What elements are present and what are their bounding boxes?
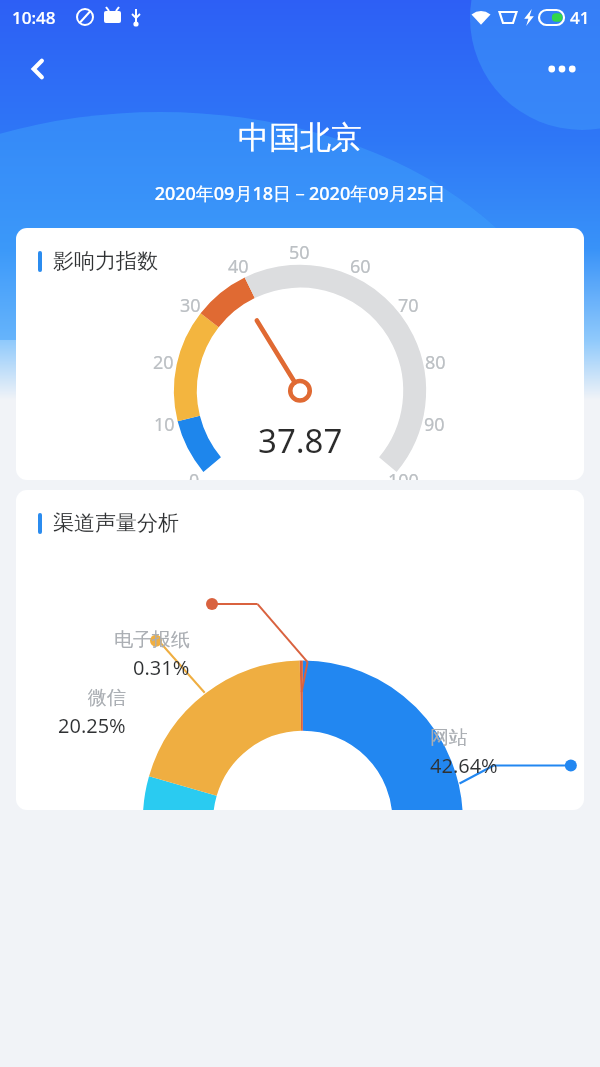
- staticText: 90: [424, 412, 445, 437]
- staticText: 0.31%: [133, 654, 190, 681]
- staticText: 41: [570, 6, 590, 29]
- staticText: 10:48: [12, 6, 56, 29]
- staticText: 100: [388, 468, 419, 480]
- staticText: 微信: [88, 686, 126, 710]
- staticText: 20.25%: [58, 712, 126, 739]
- staticText: 42.64%: [430, 752, 498, 779]
- staticText: 30: [180, 293, 201, 318]
- staticText: 0: [189, 468, 200, 480]
- button[interactable]: Back: [14, 45, 62, 93]
- staticText: 网站: [430, 726, 468, 750]
- button[interactable]: 渠道声量分析: [16, 490, 584, 810]
- staticText: 70: [398, 293, 419, 318]
- staticText: 80: [425, 350, 446, 375]
- staticText: 中国北京: [0, 118, 600, 157]
- staticText: 2020年09月18日－2020年09月25日: [0, 181, 600, 206]
- staticText: 37.87: [258, 418, 343, 463]
- staticText: 20: [153, 350, 174, 375]
- staticText: 60: [350, 254, 371, 279]
- staticText: 电子报纸: [114, 628, 190, 652]
- staticText: 渠道声量分析: [53, 510, 179, 536]
- button[interactable]: 影响力指数: [16, 228, 584, 480]
- staticText: 影响力指数: [53, 248, 158, 274]
- staticText: 50: [289, 240, 310, 265]
- staticText: 10: [154, 412, 175, 437]
- button[interactable]: More options: [538, 45, 586, 93]
- staticText: 40: [228, 254, 249, 279]
